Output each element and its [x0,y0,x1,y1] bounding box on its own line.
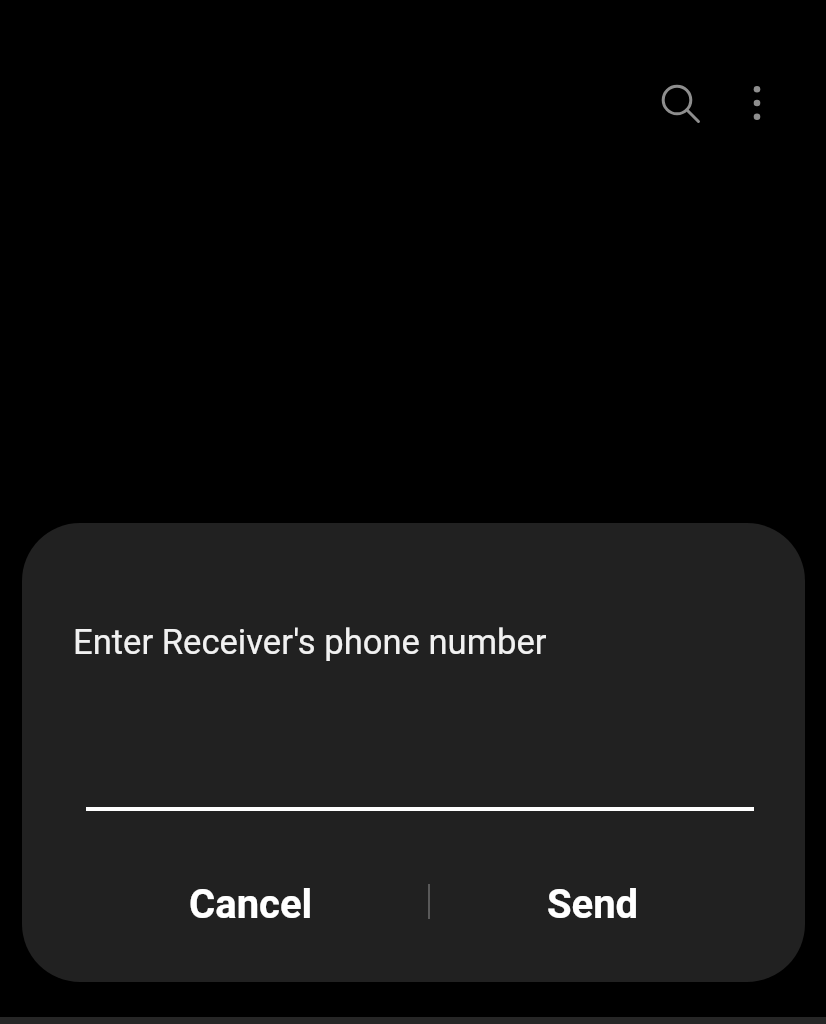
staticText: Cancel [189,881,313,928]
button[interactable]: Search [637,60,717,140]
staticText: Enter Receiver's phone number [73,622,547,663]
button[interactable]: More options [717,63,797,143]
staticText: Send [547,881,639,928]
button[interactable]: Cancel [141,861,361,947]
button[interactable]: Send [493,861,693,947]
